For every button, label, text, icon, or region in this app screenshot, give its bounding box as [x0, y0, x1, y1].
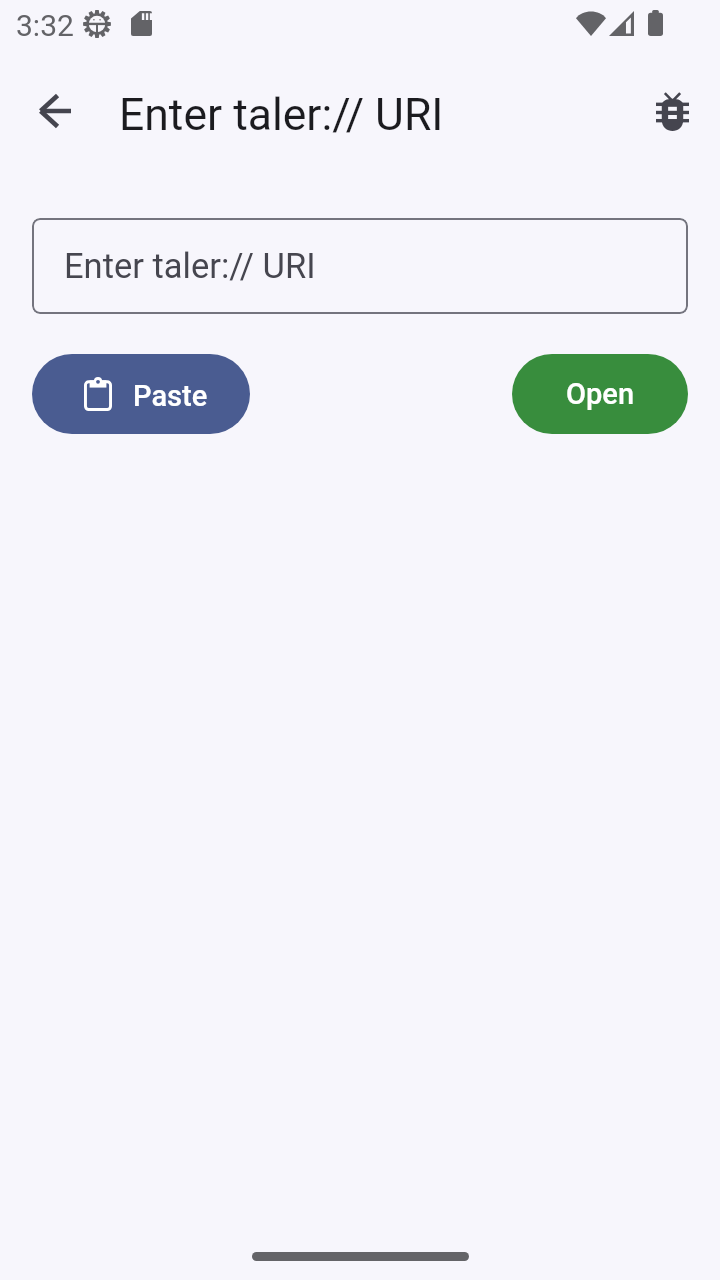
button[interactable]: Report a bug	[648, 86, 696, 134]
staticText: Open	[566, 377, 635, 411]
button[interactable]: Open	[512, 354, 688, 434]
staticText: Enter taler:// URI	[119, 89, 444, 141]
staticText: Enter taler:// URI	[64, 246, 316, 286]
button[interactable]: Enter taler:// URI	[32, 218, 688, 314]
staticText: Paste	[133, 379, 208, 413]
button[interactable]: Navigate up	[31, 87, 79, 135]
staticText: 3:32	[16, 8, 74, 43]
button[interactable]: Paste	[32, 354, 250, 434]
